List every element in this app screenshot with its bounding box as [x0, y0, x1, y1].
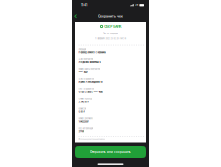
- staticText: **** 4567: [78, 71, 87, 73]
- staticText: Visa Classic **** 4086: [78, 90, 102, 93]
- staticText: Номер документа: [78, 117, 93, 120]
- staticText: ФИО получателя: [78, 58, 93, 60]
- staticText: 2 246,00 ₽: [78, 100, 89, 103]
- staticText: LTE: [135, 4, 138, 7]
- staticText: Перевод клиенту Сбербанка: [78, 51, 105, 54]
- staticText: Счет отправителя: [78, 88, 94, 90]
- staticText: Сумма перевода: [78, 98, 92, 100]
- staticText: ФИО отправителя: [78, 78, 94, 80]
- staticText: Чек по операции: [103, 32, 118, 34]
- staticText: СБЕР БАНК: [104, 25, 121, 28]
- button[interactable]: Back: [72, 12, 81, 20]
- staticText: Ирина Александровна М.: [78, 81, 103, 83]
- staticText: 11 февраля 2022 23:02:20 (МСК): [94, 37, 126, 40]
- staticText: Комиссия: [78, 108, 86, 110]
- staticText: Код авторизации: [78, 127, 93, 130]
- staticText: Людмила Яковлевна Б.: [78, 61, 101, 64]
- staticText: Отправить или сохранить: [90, 150, 131, 154]
- staticText: Исполнено, электронная подпись: [78, 138, 105, 140]
- staticText: 11:41: [81, 3, 87, 7]
- staticText: 1046222097: [78, 120, 88, 123]
- staticText: Номер карты получателя: [78, 68, 100, 70]
- staticText: Сохранить чек: [98, 14, 123, 18]
- staticText: Операция: [78, 48, 86, 51]
- button[interactable]: Отправить или сохранить: [75, 146, 146, 158]
- staticText: 277081: [78, 130, 84, 133]
- staticText: 0,00 ₽: [78, 110, 85, 113]
